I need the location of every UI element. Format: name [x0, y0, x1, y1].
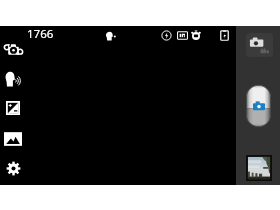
button[interactable]: Timer [188, 27, 204, 43]
button[interactable]: Picture size [174, 27, 190, 43]
button[interactable]: Open gallery [246, 155, 272, 181]
button[interactable]: Switch to video mode [246, 33, 273, 57]
button[interactable]: Shutter [246, 85, 271, 127]
button[interactable]: Flash off [158, 27, 174, 43]
button[interactable]: Storage [216, 27, 232, 43]
button[interactable]: Exposure [0, 95, 26, 121]
button[interactable]: Voice control [0, 65, 25, 91]
button[interactable]: Switch camera [0, 36, 26, 62]
staticText: 1766 [27, 26, 54, 42]
button[interactable]: Settings [0, 155, 26, 181]
button[interactable]: Scene mode [0, 126, 26, 152]
